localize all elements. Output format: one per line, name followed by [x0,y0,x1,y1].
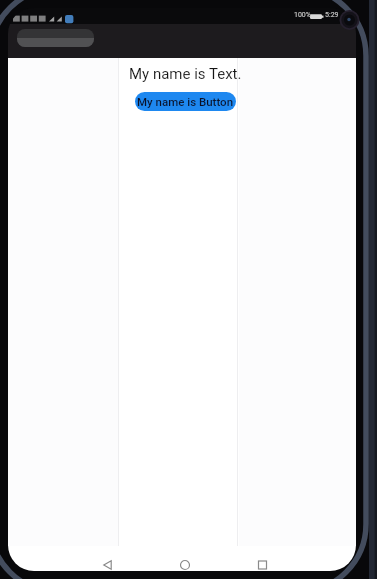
button[interactable]: My name is Button [135,92,236,111]
staticText: 100% [294,11,311,19]
staticText: 5:29 [325,11,339,19]
staticText: My name is Button [137,95,234,108]
staticText: My name is Text. [129,65,242,83]
